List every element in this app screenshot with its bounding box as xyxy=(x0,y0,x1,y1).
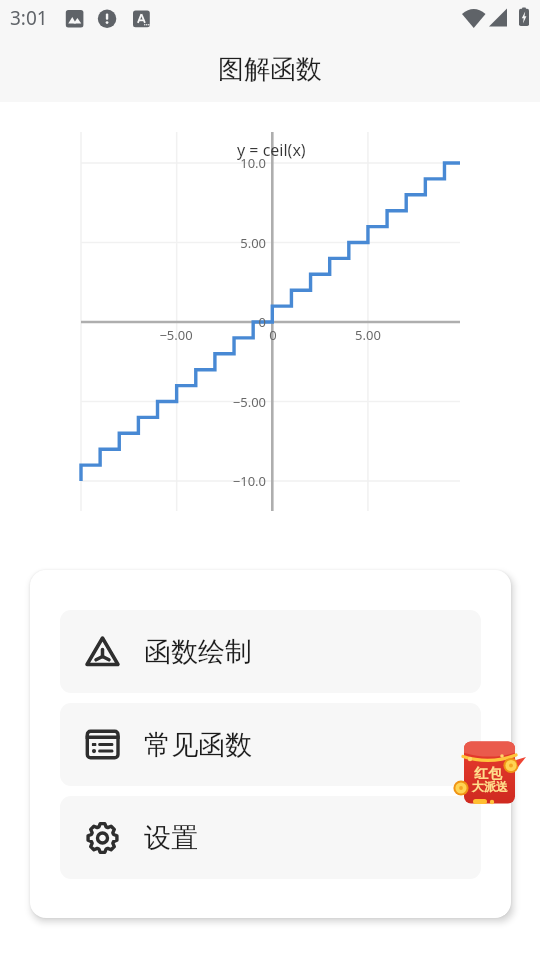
staticText: −5.00 xyxy=(206,393,266,411)
staticText: 5.00 xyxy=(338,326,398,344)
staticText: 5.00 xyxy=(206,234,266,252)
button[interactable]: 函数绘制 xyxy=(60,610,481,693)
staticText: 常见函数 xyxy=(144,728,252,762)
staticText: 红包 xyxy=(474,765,502,783)
staticText: 3:01 xyxy=(10,5,48,31)
staticText: 0 xyxy=(243,326,303,344)
button[interactable]: 设置 xyxy=(60,796,481,879)
staticText: 设置 xyxy=(144,821,198,855)
staticText: −5.00 xyxy=(146,326,206,344)
staticText: 0 xyxy=(206,313,266,331)
other: y = ceil(x) 函数图像 xyxy=(0,0,540,960)
staticText: y = ceil(x) xyxy=(237,139,306,161)
button[interactable]: 常见函数 xyxy=(60,703,481,786)
button[interactable]: 红包大派送 广告 xyxy=(450,739,526,807)
staticText: 函数绘制 xyxy=(144,635,252,669)
staticText: 大派送 xyxy=(472,779,508,794)
staticText: −10.0 xyxy=(206,472,266,490)
staticText: 图解函数 xyxy=(218,53,322,86)
staticText: 10.0 xyxy=(206,154,266,172)
